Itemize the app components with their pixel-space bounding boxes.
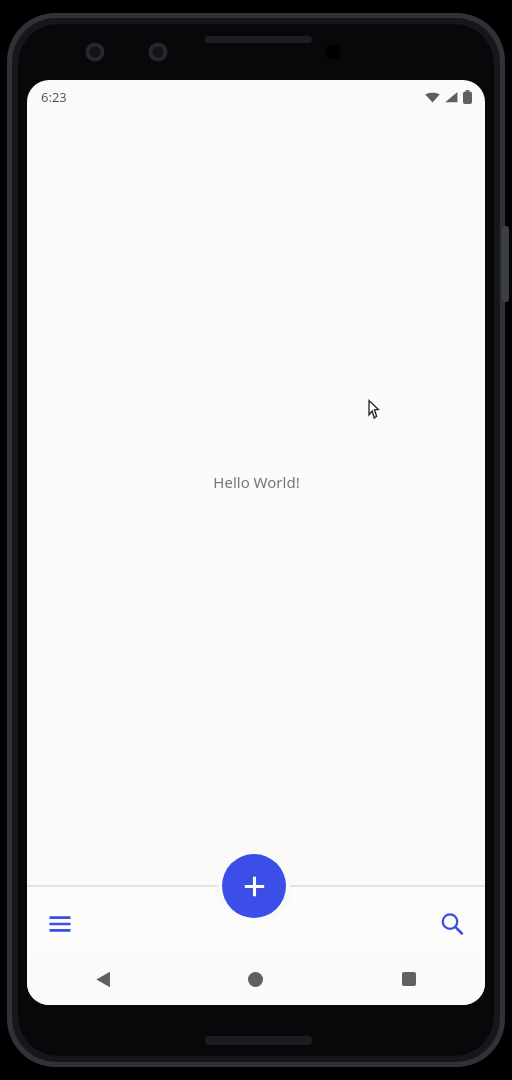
button[interactable]: Home xyxy=(179,953,332,1005)
button[interactable]: Back xyxy=(27,953,179,1005)
staticText: Hello World! xyxy=(213,472,300,492)
button[interactable]: Add xyxy=(222,854,286,918)
button[interactable]: Recent apps xyxy=(332,953,485,1005)
staticText: 6:23 xyxy=(41,88,67,106)
button[interactable]: Search xyxy=(428,900,476,948)
button[interactable]: Menu xyxy=(36,900,84,948)
